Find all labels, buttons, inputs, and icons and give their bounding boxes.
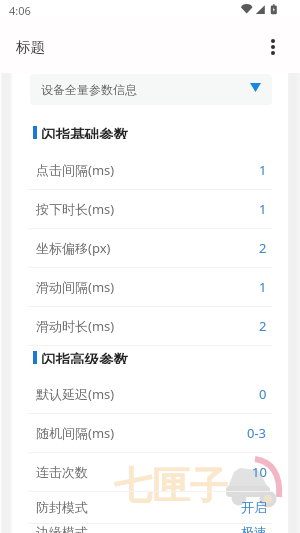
- staticText: 10: [252, 463, 267, 481]
- staticText: 随机间隔(ms): [36, 424, 115, 442]
- staticText: 七匣子: [114, 462, 228, 510]
- staticText: 坐标偏移(px): [36, 239, 111, 257]
- button[interactable]: 设备全量参数信息: [30, 74, 272, 105]
- staticText: 1: [259, 200, 267, 218]
- button[interactable]: 点击间隔(ms): [0, 151, 300, 189]
- staticText: 按下时长(ms): [36, 200, 115, 218]
- button[interactable]: More options: [254, 28, 292, 66]
- staticText: 边缘模式: [36, 524, 88, 533]
- button[interactable]: 坐标偏移(px): [0, 229, 300, 267]
- staticText: 0: [259, 385, 267, 403]
- staticText: 设备全量参数信息: [41, 82, 137, 97]
- staticText: 标题: [16, 38, 45, 56]
- staticText: 2: [259, 239, 267, 257]
- staticText: 4:06: [9, 3, 31, 18]
- button[interactable]: 滑动间隔(ms): [0, 268, 300, 306]
- staticText: 1: [259, 278, 267, 296]
- button[interactable]: 随机间隔(ms): [0, 414, 300, 452]
- button[interactable]: 按下时长(ms): [0, 190, 300, 228]
- button[interactable]: 防封模式: [0, 492, 300, 523]
- staticText: 开启: [241, 499, 267, 515]
- button[interactable]: 边缘模式: [0, 524, 300, 533]
- staticText: 2: [259, 317, 267, 335]
- staticText: 滑动间隔(ms): [36, 278, 115, 296]
- staticText: 极速: [241, 524, 267, 533]
- staticText: 防封模式: [36, 499, 88, 515]
- staticText: 滑动时长(ms): [36, 317, 115, 335]
- staticText: 闪指基础参数: [41, 126, 128, 139]
- button[interactable]: 滑动时长(ms): [0, 307, 300, 345]
- staticText: 默认延迟(ms): [36, 385, 115, 403]
- staticText: 闪指高级参数: [41, 351, 128, 364]
- staticText: 0-3: [247, 424, 267, 442]
- button[interactable]: 连击次数: [0, 453, 300, 491]
- staticText: 连击次数: [36, 464, 88, 480]
- button[interactable]: 默认延迟(ms): [0, 375, 300, 413]
- staticText: 1: [259, 161, 267, 179]
- staticText: 点击间隔(ms): [36, 161, 115, 179]
